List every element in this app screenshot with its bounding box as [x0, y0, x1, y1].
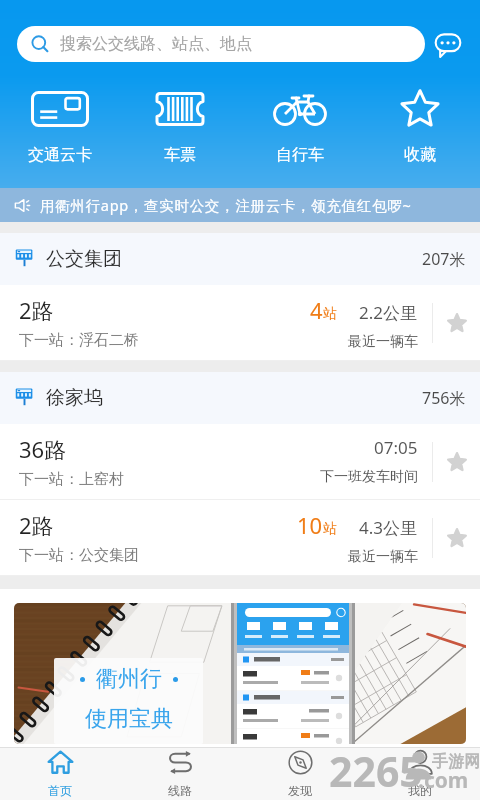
- staticText: 756米: [422, 387, 466, 409]
- button[interactable]: 收藏: [433, 500, 480, 575]
- staticText: 最近一辆车: [348, 333, 418, 351]
- button[interactable]: 2路: [0, 285, 480, 360]
- button[interactable]: 我的: [360, 747, 480, 800]
- staticText: 站: [323, 520, 337, 538]
- staticText: 2路: [19, 295, 54, 325]
- staticText: 站: [323, 305, 337, 323]
- staticText: 2.2公里: [359, 301, 418, 324]
- staticText: 最近一辆车: [348, 548, 418, 566]
- button[interactable]: 徐家坞: [0, 372, 480, 424]
- staticText: 下一班发车时间: [320, 468, 418, 486]
- staticText: 下一站：公交集团: [19, 546, 139, 565]
- button[interactable]: 首页: [0, 747, 120, 800]
- button[interactable]: 发现: [240, 747, 360, 800]
- staticText: 207米: [422, 248, 466, 270]
- button[interactable]: 车票: [120, 91, 240, 165]
- staticText: 交通云卡: [28, 145, 92, 165]
- button[interactable]: 收藏: [433, 285, 480, 360]
- staticText: 下一站：浮石二桥: [19, 331, 139, 350]
- staticText: 公交集团: [46, 247, 122, 271]
- staticText: 搜索公交线路、站点、地点: [60, 34, 252, 54]
- button[interactable]: 用衢州行app，查实时公交，注册云卡，领充值红包啰~: [0, 188, 480, 222]
- staticText: 用衢州行app，查实时公交，注册云卡，领充值红包啰~: [40, 195, 412, 215]
- staticText: 2路: [19, 510, 54, 540]
- staticText: 首页: [48, 783, 72, 798]
- staticText: 徐家坞: [46, 386, 103, 410]
- button[interactable]: 交通云卡: [0, 91, 120, 165]
- button[interactable]: 2路: [0, 500, 480, 575]
- staticText: 收藏: [404, 145, 436, 165]
- staticText: 手游网: [432, 752, 480, 772]
- staticText: 36路: [19, 434, 67, 464]
- staticText: 我的: [408, 783, 432, 798]
- button[interactable]: 衢州行: [14, 603, 466, 744]
- staticText: 07:05: [374, 436, 418, 459]
- button[interactable]: 公交集团: [0, 233, 480, 285]
- staticText: 发现: [288, 783, 312, 798]
- staticText: 下一站：上窑村: [19, 470, 124, 489]
- staticText: 线路: [168, 783, 192, 798]
- button[interactable]: 收藏: [360, 91, 480, 165]
- button[interactable]: 36路: [0, 424, 480, 499]
- button[interactable]: 自行车: [240, 91, 360, 165]
- button[interactable]: 收藏: [433, 424, 480, 499]
- staticText: .com: [418, 766, 469, 795]
- staticText: 车票: [164, 145, 196, 165]
- button[interactable]: 消息: [434, 31, 462, 59]
- staticText: 4: [310, 295, 323, 325]
- staticText: 使用宝典: [85, 705, 173, 733]
- staticText: 4.3公里: [359, 516, 418, 539]
- button[interactable]: 搜索公交线路、站点、地点: [17, 26, 425, 62]
- staticText: 10: [297, 510, 323, 540]
- staticText: 衢州行: [96, 665, 162, 693]
- staticText: 2265: [329, 743, 423, 796]
- button[interactable]: 线路: [120, 747, 240, 800]
- staticText: 自行车: [276, 145, 324, 165]
